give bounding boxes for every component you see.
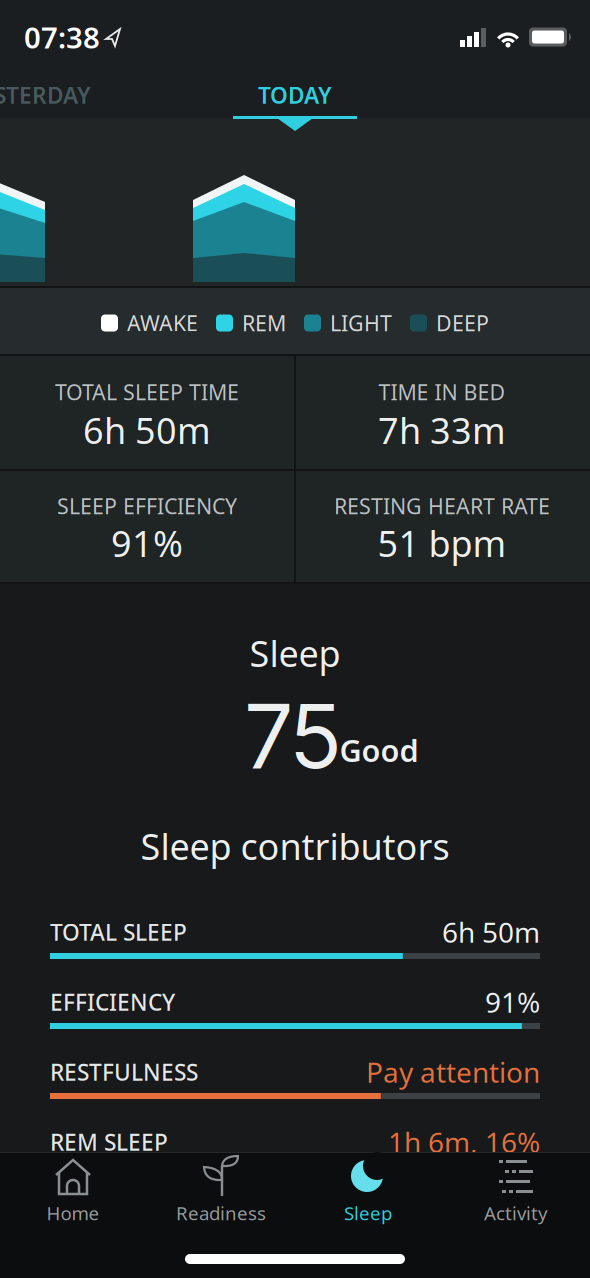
staticText: 6h 50m <box>442 913 540 951</box>
staticText: TOTAL SLEEP TIME <box>55 378 239 406</box>
staticText: REM <box>242 309 286 337</box>
staticText: 51 bpm <box>377 519 506 567</box>
button[interactable]: TODAY <box>0 0 590 1278</box>
staticText: 6h 50m <box>83 406 211 454</box>
staticText: RESTFULNESS <box>50 1057 198 1087</box>
button[interactable]: YESTERDAY <box>0 0 590 1278</box>
staticText: TODAY <box>258 80 332 110</box>
button[interactable]: Home <box>0 0 147 100</box>
staticText: AWAKE <box>127 309 198 337</box>
button[interactable]: EFFICIENCY <box>0 0 590 1278</box>
staticText: 91% <box>485 983 540 1021</box>
button[interactable]: Activity <box>0 0 147 100</box>
staticText: Pay attention <box>366 1053 540 1091</box>
staticText: 75 <box>246 683 340 789</box>
button[interactable]: RESTFULNESS <box>0 0 590 1278</box>
staticText: 91% <box>111 519 183 567</box>
staticText: REM SLEEP <box>50 1127 168 1157</box>
staticText: Sleep contributors <box>140 822 449 870</box>
staticText: Readiness <box>176 1201 266 1225</box>
button[interactable]: REM SLEEP <box>0 0 590 1278</box>
staticText: 7h 33m <box>378 406 506 454</box>
staticText: YESTERDAY <box>0 80 91 110</box>
staticText: DEEP <box>436 309 489 337</box>
staticText: EFFICIENCY <box>50 987 175 1017</box>
staticText: RESTING HEART RATE <box>334 492 550 520</box>
staticText: Home <box>46 1201 99 1225</box>
button[interactable]: Sleep <box>0 0 147 100</box>
staticText: TOTAL SLEEP <box>50 917 187 947</box>
staticText: SLEEP EFFICIENCY <box>57 492 237 520</box>
staticText: Sleep <box>249 629 340 677</box>
staticText: 1h 6m, 16% <box>388 1123 540 1161</box>
button[interactable]: Readiness <box>0 0 147 100</box>
staticText: LIGHT <box>330 309 392 337</box>
staticText: 07:38 <box>24 17 100 56</box>
button[interactable]: TOTAL SLEEP <box>0 0 590 1278</box>
staticText: Sleep <box>344 1201 392 1225</box>
staticText: Activity <box>484 1201 548 1225</box>
staticText: Good <box>339 730 418 770</box>
staticText: TIME IN BED <box>378 378 505 406</box>
